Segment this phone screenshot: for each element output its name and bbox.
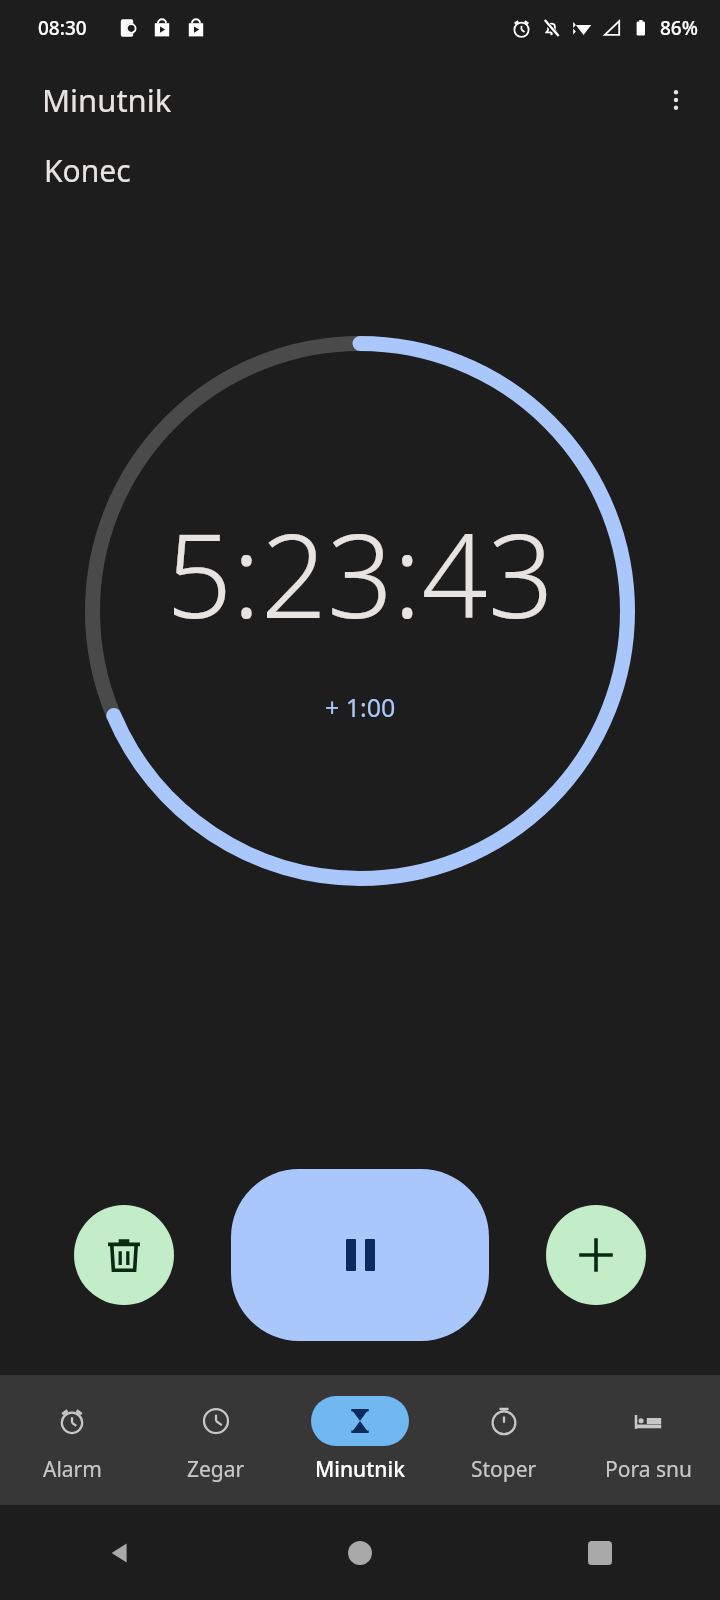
staticText: Stoper: [471, 1455, 537, 1484]
staticText: Minutnik: [315, 1455, 405, 1484]
staticText: Minutnik: [42, 79, 172, 121]
button[interactable]: Pora snu: [576, 1375, 720, 1505]
button[interactable]: Alarm: [0, 1375, 144, 1505]
staticText: Zegar: [187, 1455, 245, 1484]
button[interactable]: Recent apps: [480, 1505, 720, 1600]
button[interactable]: Add one minute: [546, 1205, 646, 1305]
button[interactable]: Minutnik: [288, 1375, 432, 1505]
staticText: Alarm: [43, 1455, 102, 1484]
button[interactable]: Back: [0, 1505, 240, 1600]
button[interactable]: Home: [240, 1505, 480, 1600]
button[interactable]: Stoper: [432, 1375, 576, 1505]
button[interactable]: More options: [650, 74, 702, 126]
staticText: Pora snu: [605, 1455, 692, 1484]
button[interactable]: Delete timer: [74, 1205, 174, 1305]
staticText: 08:30: [38, 15, 87, 41]
staticText: + 1:00: [325, 690, 396, 724]
staticText: 86%: [660, 15, 698, 41]
button[interactable]: Zegar: [144, 1375, 288, 1505]
button[interactable]: Pause timer: [231, 1169, 489, 1341]
staticText: Konec: [44, 150, 131, 191]
staticText: 5:23:43: [166, 494, 554, 652]
button[interactable]: + 1:00: [315, 686, 406, 728]
